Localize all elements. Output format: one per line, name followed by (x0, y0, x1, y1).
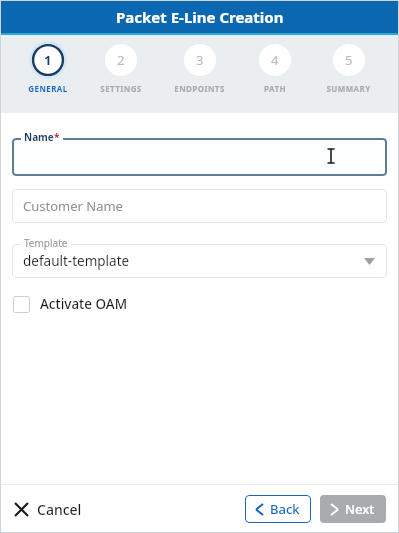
button[interactable] (12, 138, 387, 176)
button[interactable]: Customer Name (12, 189, 387, 223)
button[interactable]: Back (245, 495, 311, 523)
staticText: Packet E-Line Creation (116, 7, 284, 27)
staticText: Template (24, 236, 68, 250)
button[interactable]: 5 (322, 35, 375, 98)
staticText: Name (24, 130, 54, 144)
staticText: Customer Name (23, 197, 123, 215)
staticText: Cancel (37, 500, 82, 519)
button[interactable]: Activate OAM (12, 292, 129, 316)
staticText: * (54, 130, 60, 144)
staticText: PATH (264, 83, 286, 94)
staticText: SETTINGS (100, 83, 142, 94)
button[interactable]: 2 (96, 35, 146, 98)
staticText: 2 (117, 51, 125, 69)
staticText: GENERAL (28, 83, 68, 94)
button[interactable]: Cancel (13, 494, 84, 525)
staticText: 3 (196, 51, 204, 69)
button[interactable]: default-template (12, 244, 387, 278)
staticText: 5 (345, 51, 353, 69)
staticText: Next (345, 500, 375, 518)
staticText: 4 (271, 51, 279, 69)
staticText: SUMMARY (326, 83, 371, 94)
button[interactable]: 1 (24, 35, 72, 98)
staticText: 1 (44, 51, 52, 69)
staticText: default-template (23, 252, 130, 270)
staticText: Back (270, 500, 300, 518)
staticText: Activate OAM (40, 295, 128, 313)
staticText: ENDPOINTS (174, 83, 225, 94)
button[interactable]: 3 (170, 35, 229, 98)
button[interactable]: 4 (252, 35, 298, 98)
button[interactable]: Next (320, 495, 386, 523)
